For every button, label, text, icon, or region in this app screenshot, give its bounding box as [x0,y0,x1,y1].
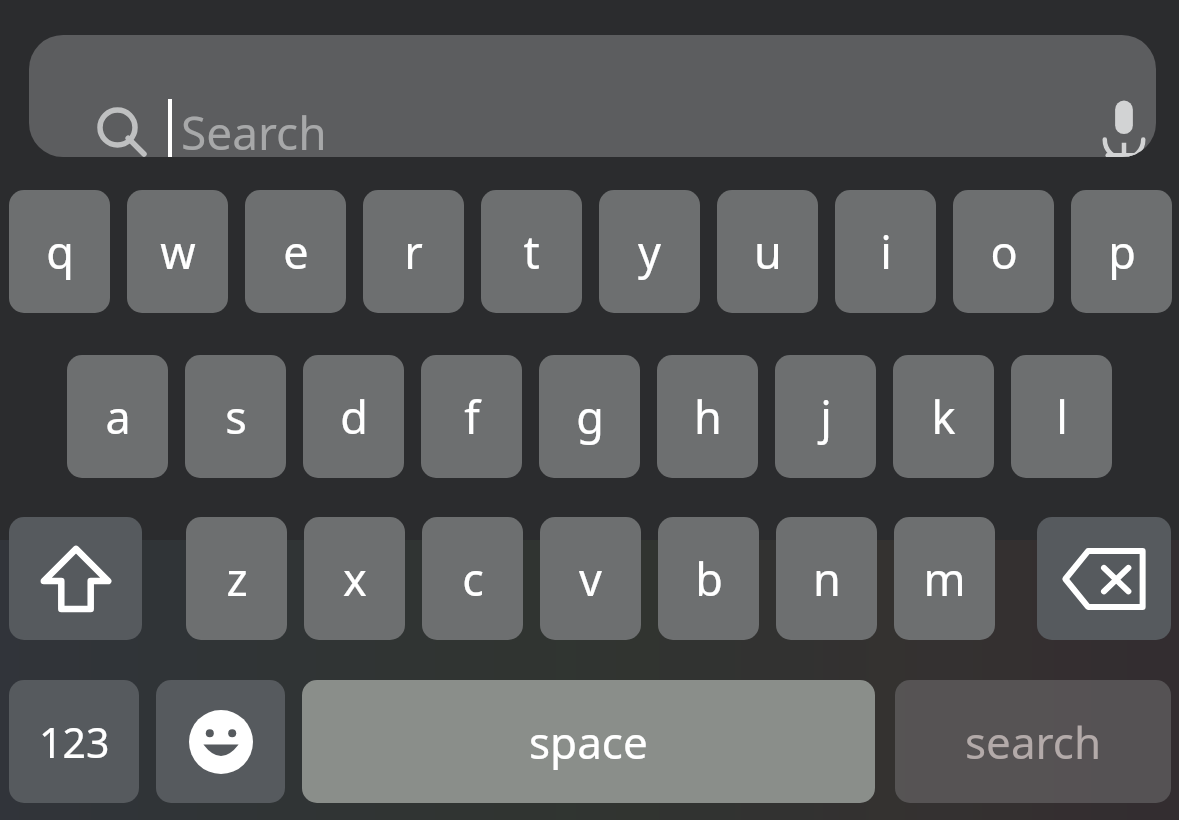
staticText: a [105,386,131,447]
button[interactable]: a [67,355,168,478]
button[interactable]: f [421,355,522,478]
button[interactable]: k [893,355,994,478]
staticText: w [160,221,196,282]
staticText: search [965,712,1102,772]
staticText: i [880,221,892,282]
staticText: k [931,386,956,447]
button[interactable]: z [186,517,287,640]
button[interactable]: p [1071,190,1172,313]
staticText: s [225,386,247,447]
button[interactable]: i [835,190,936,313]
staticText: j [820,386,832,447]
staticText: 123 [39,714,110,770]
staticText: z [226,548,248,609]
staticText: b [695,548,723,609]
button[interactable]: b [658,517,759,640]
button[interactable]: space [302,680,875,803]
button[interactable]: n [776,517,877,640]
staticText: f [464,386,480,447]
button[interactable]: Emoji keyboard [156,680,285,803]
staticText: u [754,221,782,282]
button[interactable]: j [775,355,876,478]
staticText: h [694,386,722,447]
button[interactable]: 123 [9,680,139,803]
button[interactable]: search [895,680,1171,803]
button[interactable]: Voice search [1087,93,1156,157]
staticText: q [46,221,74,282]
staticText: x [343,548,367,609]
staticText: t [523,221,540,282]
button[interactable]: e [245,190,346,313]
staticText: o [990,221,1018,282]
button[interactable]: h [657,355,758,478]
staticText: Search [181,101,327,157]
button[interactable]: t [481,190,582,313]
staticText: m [923,548,966,609]
button[interactable]: s [185,355,286,478]
button[interactable]: x [304,517,405,640]
button[interactable]: g [539,355,640,478]
button[interactable]: c [422,517,523,640]
staticText: d [340,386,368,447]
staticText: e [283,221,309,282]
button[interactable]: w [127,190,228,313]
button[interactable]: Delete [1037,517,1171,640]
button[interactable]: Shift [9,517,142,640]
button[interactable]: o [953,190,1054,313]
staticText: g [576,386,604,447]
staticText: n [813,548,841,609]
staticText: v [579,548,602,609]
staticText: l [1056,386,1068,447]
staticText: p [1108,221,1136,282]
button[interactable]: m [894,517,995,640]
button[interactable]: d [303,355,404,478]
button[interactable]: Search [29,35,1156,157]
button[interactable]: r [363,190,464,313]
button[interactable]: v [540,517,641,640]
button[interactable]: y [599,190,700,313]
button[interactable]: l [1011,355,1112,478]
button[interactable]: u [717,190,818,313]
staticText: c [462,548,484,609]
staticText: y [638,221,661,282]
staticText: r [404,221,423,282]
staticText: space [529,712,648,772]
button[interactable]: q [9,190,110,313]
